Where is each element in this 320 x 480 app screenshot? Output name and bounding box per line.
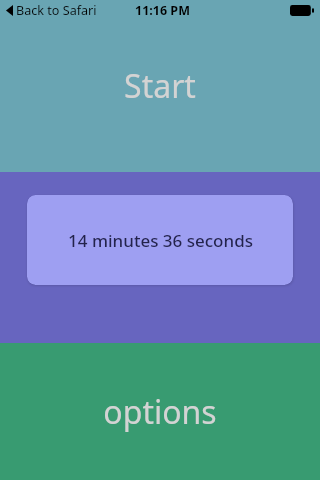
- staticText: 14 minutes 36 seconds: [68, 229, 253, 252]
- staticText: 11:16 PM: [135, 2, 190, 19]
- button[interactable]: Start: [0, 0, 320, 172]
- other: Battery full: [290, 5, 314, 16]
- staticText: Start: [124, 64, 196, 108]
- button[interactable]: options: [0, 343, 320, 480]
- staticText: options: [103, 390, 217, 434]
- other: Back: [6, 5, 13, 16]
- button[interactable]: Back: [6, 2, 97, 19]
- button[interactable]: 14 minutes 36 seconds: [27, 195, 293, 285]
- staticText: Back to Safari: [16, 2, 97, 19]
